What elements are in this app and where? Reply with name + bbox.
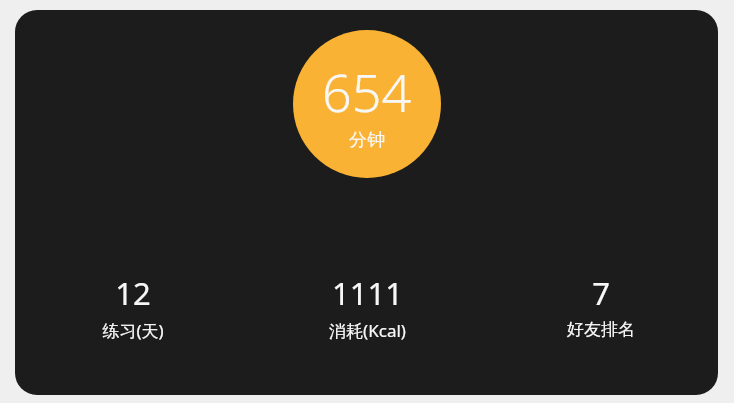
staticText: 7 [592, 272, 610, 314]
button[interactable]: 7 [484, 272, 718, 340]
button[interactable]: 654 [293, 30, 441, 178]
staticText: 练习(天) [102, 319, 164, 342]
staticText: 654 [322, 56, 412, 127]
button[interactable]: 12 [15, 272, 250, 342]
staticText: 好友排名 [567, 319, 635, 340]
staticText: 分钟 [349, 129, 385, 152]
staticText: 12 [115, 272, 151, 314]
staticText: 消耗(Kcal) [329, 319, 406, 342]
staticText: 1111 [332, 272, 403, 314]
button[interactable]: 1111 [250, 272, 484, 342]
